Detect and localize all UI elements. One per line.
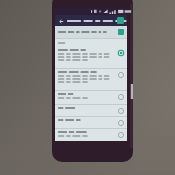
button[interactable]: Navigate up (57, 17, 65, 25)
button[interactable] (55, 105, 127, 116)
button[interactable] (55, 26, 127, 38)
button[interactable]: Help (117, 17, 124, 24)
button[interactable] (55, 129, 127, 141)
button[interactable] (55, 69, 127, 90)
button[interactable] (55, 91, 127, 104)
button[interactable] (55, 117, 127, 128)
button[interactable] (55, 47, 127, 68)
